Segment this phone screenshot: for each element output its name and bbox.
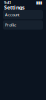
staticText: Account — [5, 12, 19, 17]
staticText: Profile — [5, 22, 16, 28]
staticText: 9:41 — [4, 0, 11, 5]
staticText: ▮▮▮ — [36, 0, 42, 5]
staticText: Settings — [4, 4, 25, 11]
